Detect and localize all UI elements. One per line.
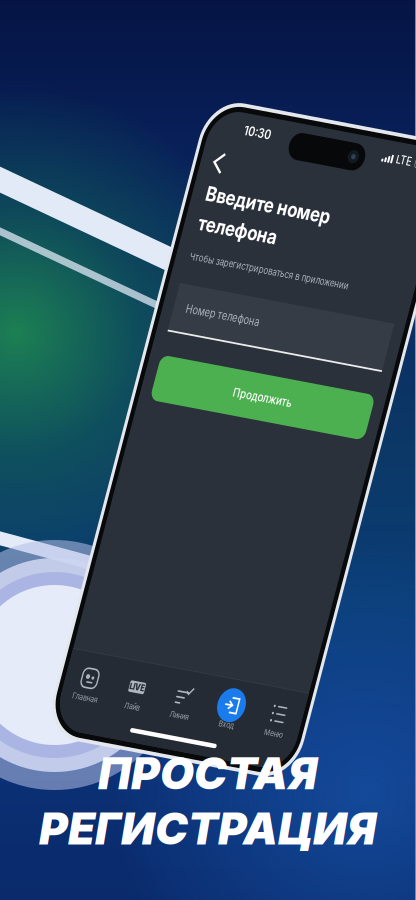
button[interactable]: LIVE: [90, 776, 169, 823]
staticText: Введите номер: [33, 110, 240, 143]
staticText: Номер телефона: [49, 274, 171, 292]
button[interactable]: Продолжить: [29, 349, 386, 411]
staticText: Главная: [30, 810, 72, 823]
staticText: Меню: [350, 810, 381, 823]
staticText: Продолжить: [159, 371, 257, 390]
button[interactable]: Главная: [11, 776, 90, 823]
staticText: телефона: [33, 150, 164, 183]
button[interactable]: Меню: [326, 776, 404, 823]
staticText: ПРОСТАЯ: [98, 746, 317, 800]
staticText: LIVE: [117, 784, 142, 797]
staticText: Вход: [274, 810, 300, 823]
staticText: Лайв: [116, 810, 142, 823]
staticText: Чтобы зарегистрироваться в приложении: [33, 205, 298, 221]
staticText: Линия: [192, 810, 224, 823]
staticText: РЕГИСТРАЦИЯ: [39, 802, 376, 855]
button[interactable]: Вход: [247, 776, 326, 823]
button[interactable]: Линия: [169, 776, 247, 823]
